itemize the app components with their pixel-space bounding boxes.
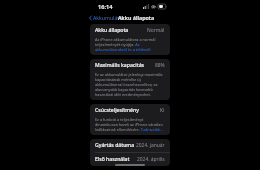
staticText: 16:14	[98, 3, 113, 11]
staticText: Csúcsteljesítmény	[95, 107, 139, 114]
button[interactable]: Back to Akkumulátor	[86, 13, 127, 22]
staticText: Akkumulátor	[93, 14, 125, 21]
staticText: Maximális kapacitás	[95, 62, 145, 69]
staticText: Első használat	[95, 156, 130, 163]
staticText: Ki	[160, 107, 165, 114]
staticText: Akku állapota	[118, 14, 155, 21]
button[interactable]: Akku állapota	[90, 24, 170, 37]
staticText: Az iPhone akkumulátora a normál teljesít…	[95, 37, 165, 52]
button[interactable]: Csúcsteljesítmény	[90, 104, 170, 117]
staticText: Normál	[147, 27, 165, 34]
button[interactable]: Maximális kapacitás	[90, 59, 170, 72]
staticText: Akku állapota	[95, 27, 129, 34]
staticText: Gyártás dátuma	[95, 142, 135, 149]
button[interactable]: Első használat	[90, 153, 170, 166]
button[interactable]: Gyártás dátuma	[90, 139, 170, 152]
staticText: Ez az akkumulátor jelenlegi maximális ka…	[95, 72, 165, 97]
staticText: 2024. január	[136, 142, 165, 149]
staticText: 88%	[155, 62, 165, 69]
staticText: 2024. április	[137, 156, 165, 163]
staticText: Ez a funkció a teljesítményt dinamikusan…	[95, 117, 165, 132]
